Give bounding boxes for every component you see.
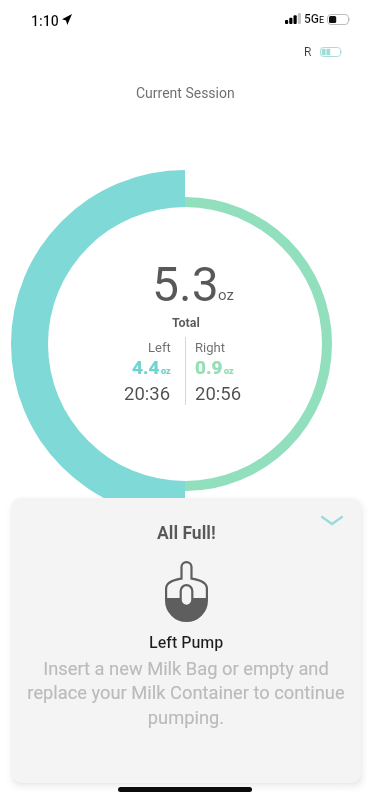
staticText: All Full!: [157, 523, 216, 544]
staticText: 0.9: [195, 356, 223, 378]
staticText: 20:56: [195, 383, 242, 405]
staticText: E: [319, 15, 325, 26]
staticText: Current Session: [136, 85, 235, 101]
staticText: 20:36: [124, 383, 171, 405]
staticText: Right: [195, 340, 225, 355]
staticText: 5G: [304, 12, 319, 26]
staticText: 1:10: [31, 13, 59, 29]
staticText: 5.3: [152, 256, 219, 312]
staticText: oz: [161, 366, 171, 377]
button[interactable]: Collapse: [315, 503, 349, 537]
staticText: Insert a new Milk Bag or empty and repla…: [23, 658, 349, 729]
staticText: Total: [172, 315, 200, 330]
staticText: 4.4: [132, 356, 160, 378]
staticText: R: [304, 45, 312, 59]
staticText: oz: [218, 286, 234, 304]
staticText: Left Pump: [149, 633, 224, 652]
staticText: oz: [224, 366, 234, 377]
staticText: Left: [148, 340, 171, 355]
